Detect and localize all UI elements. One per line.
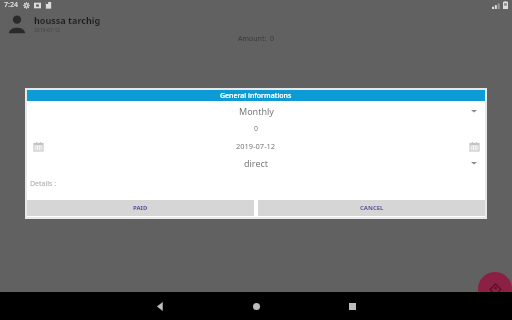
- staticText: Details :: [30, 179, 57, 189]
- button[interactable]: Pick start date: [31, 139, 45, 153]
- staticText: PAID: [133, 204, 148, 212]
- staticText: Amount: 0: [238, 34, 274, 44]
- staticText: 0: [254, 124, 259, 134]
- button[interactable]: Pick end date: [467, 139, 481, 153]
- button[interactable]: Back: [112, 292, 208, 320]
- staticText: direct: [244, 157, 269, 169]
- button[interactable]: Add payment: [478, 272, 512, 306]
- staticText: Monthly: [239, 105, 274, 117]
- button[interactable]: PAID: [27, 200, 254, 216]
- staticText: General informations: [220, 91, 292, 101]
- staticText: 7:24: [4, 0, 18, 10]
- staticText: houssa tarchig: [34, 14, 101, 26]
- button[interactable]: Monthly: [27, 101, 485, 120]
- button[interactable]: 2019-07-12: [236, 141, 276, 151]
- staticText: 2019-07-12: [34, 27, 61, 34]
- button[interactable]: Recent apps: [304, 292, 400, 320]
- staticText: CANCEL: [360, 204, 384, 212]
- button[interactable]: direct: [27, 154, 485, 171]
- staticText: 2019-07-12: [236, 141, 276, 151]
- button[interactable]: Home: [208, 292, 304, 320]
- button[interactable]: Details :: [27, 171, 485, 200]
- button[interactable]: CANCEL: [258, 200, 485, 216]
